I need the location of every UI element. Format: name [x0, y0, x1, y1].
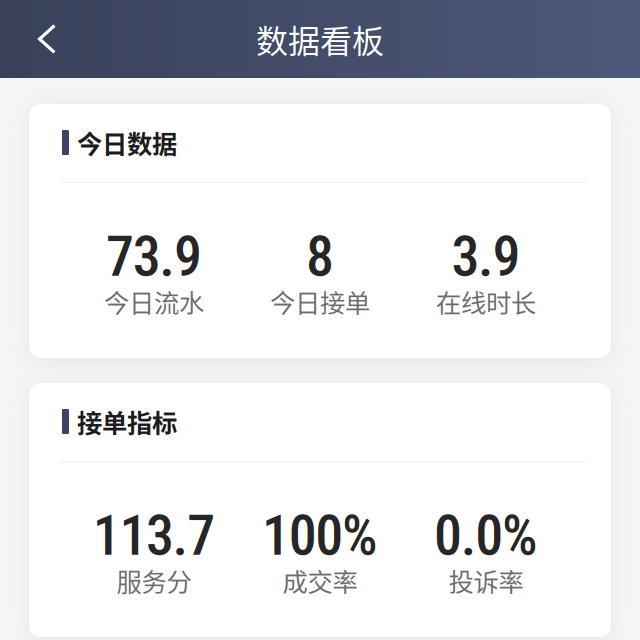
staticText: 今日流水 [104, 283, 204, 320]
staticText: 0.0% [434, 503, 538, 568]
staticText: 今日数据 [77, 124, 177, 161]
staticText: 113.7 [93, 503, 215, 568]
staticText: 100% [262, 503, 378, 568]
staticText: 73.9 [106, 224, 202, 289]
staticText: 3.9 [451, 224, 521, 289]
staticText: 成交率 [282, 562, 357, 599]
staticText: 投诉率 [448, 562, 523, 599]
staticText: 数据看板 [256, 16, 384, 62]
staticText: 8 [306, 224, 334, 289]
staticText: 今日接单 [270, 283, 370, 320]
button[interactable]: Back [0, 0, 94, 78]
staticText: 服务分 [116, 562, 191, 599]
staticText: 接单指标 [77, 403, 177, 440]
staticText: 在线时长 [436, 283, 536, 320]
